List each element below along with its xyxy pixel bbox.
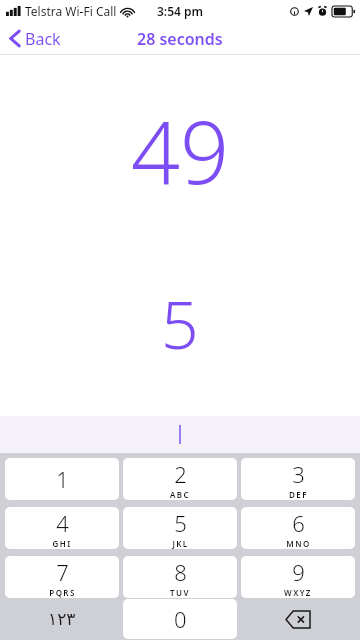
staticText: 6 [292,508,305,538]
staticText: GHI [52,538,72,549]
staticText: 1 [56,464,69,494]
staticText: JKL [172,538,189,549]
button[interactable]: 8 [123,556,237,598]
button[interactable]: 4 [5,507,119,549]
staticText: 2 [174,459,187,489]
staticText: Back [25,28,61,50]
staticText: DEF [289,489,308,500]
staticText: ١٢٣ [48,609,76,629]
button[interactable]: 1 [5,458,119,500]
button[interactable]: 7 [5,556,119,598]
staticText: 0 [174,604,187,634]
staticText: 7 [56,557,69,587]
staticText: 9 [292,557,305,587]
button[interactable]: 0 [123,599,237,639]
staticText: PQRS [49,587,76,598]
button[interactable]: 3 [241,458,355,500]
staticText: 4 [56,508,69,538]
button[interactable]: ١٢٣ [5,598,119,640]
staticText: 28 seconds [137,28,223,50]
staticText: ABC [170,489,190,500]
staticText: 5 [174,508,187,538]
staticText: 49 [131,92,230,209]
staticText: 5 [161,278,199,368]
staticText: WXYZ [284,587,312,598]
staticText: MNO [286,538,311,549]
button[interactable]: 6 [241,507,355,549]
staticText: 3 [292,459,305,489]
button[interactable]: Backspace [241,598,355,640]
staticText: 8 [174,557,187,587]
staticText: TUV [170,587,190,598]
button[interactable]: 2 [123,458,237,500]
staticText: 3:54 pm [157,3,204,19]
button[interactable]: 9 [241,556,355,598]
staticText: Telstra Wi-Fi Call [25,3,117,19]
button[interactable]: Back [0,22,71,55]
button[interactable]: 5 [123,507,237,549]
